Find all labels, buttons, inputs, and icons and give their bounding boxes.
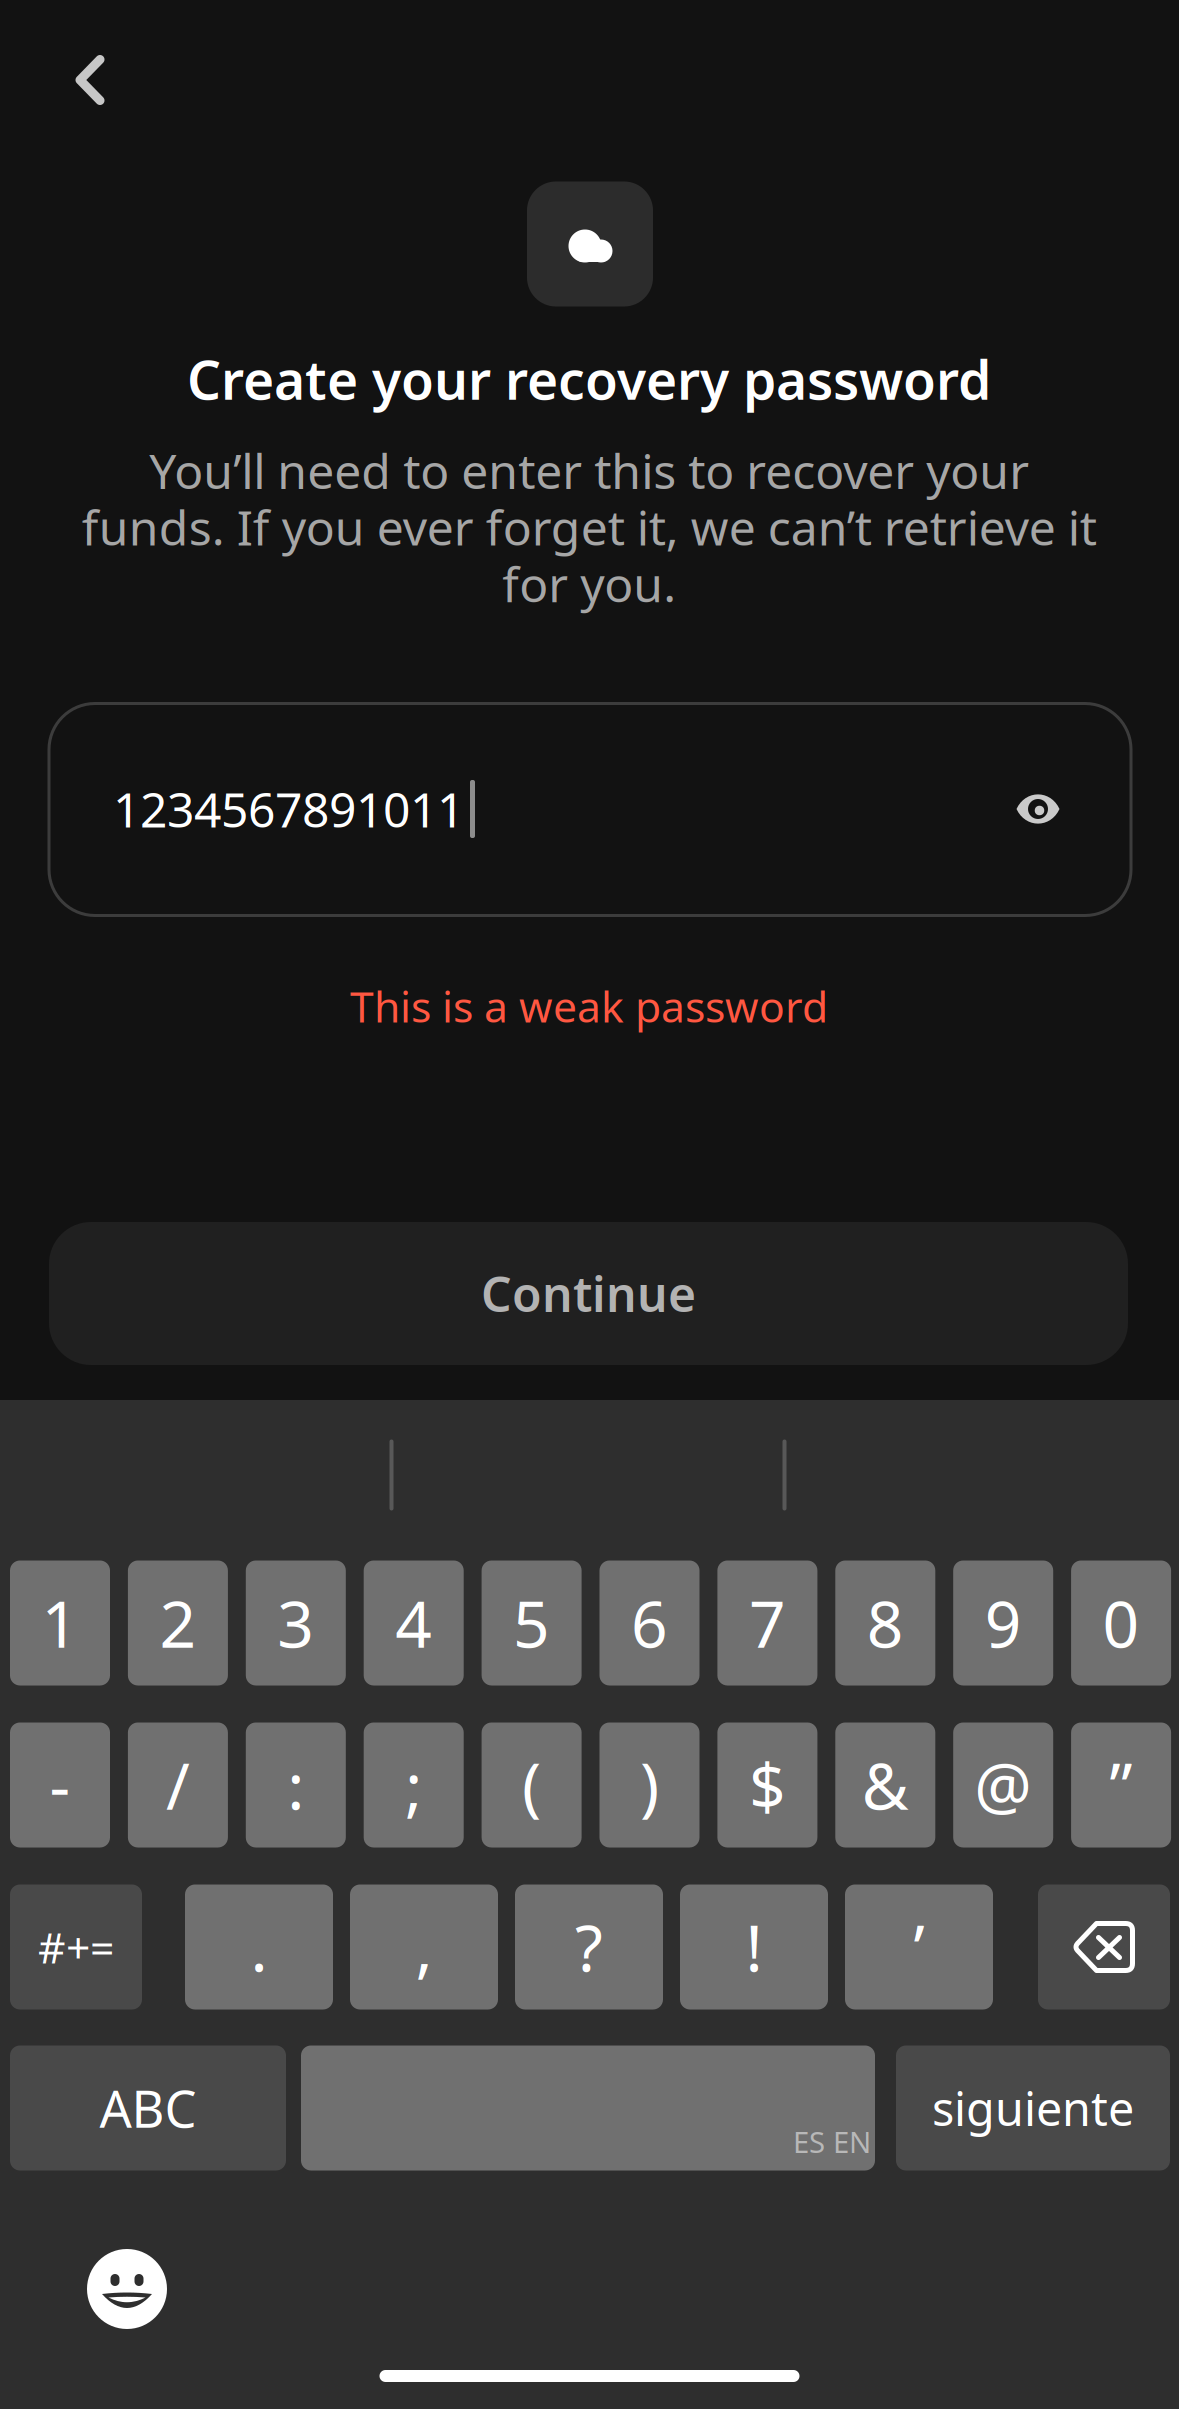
button[interactable]: : <box>246 1722 346 1847</box>
staticText: 6 <box>631 1580 668 1665</box>
button[interactable]: 3 <box>246 1560 346 1685</box>
staticText: Create your recovery password <box>187 344 991 414</box>
button[interactable]: 5 <box>482 1560 582 1685</box>
button[interactable]: 6 <box>599 1560 699 1685</box>
button[interactable]: ( <box>482 1722 582 1847</box>
staticText: 9 <box>985 1580 1022 1665</box>
button[interactable]: ) <box>599 1722 699 1847</box>
button[interactable]: Continue <box>49 1222 1128 1365</box>
staticText: 1 <box>41 1580 78 1665</box>
staticText: ABC <box>99 2074 196 2142</box>
staticText: ( <box>522 1742 541 1827</box>
staticText: Continue <box>481 1262 696 1325</box>
staticText: & <box>862 1742 909 1827</box>
button[interactable]: / <box>128 1722 228 1847</box>
button[interactable]: ’ <box>845 1884 993 2009</box>
staticText: ’ <box>913 1904 924 1989</box>
button[interactable]: $ <box>717 1722 817 1847</box>
staticText: You’ll need to enter this to recover you… <box>81 438 1096 616</box>
staticText: ” <box>1110 1742 1133 1827</box>
button[interactable]: 0 <box>1071 1560 1171 1685</box>
button[interactable]: ; <box>364 1722 464 1847</box>
button[interactable]: siguiente <box>896 2045 1170 2170</box>
staticText: $ <box>749 1742 786 1827</box>
staticText: #+= <box>38 1919 114 1975</box>
staticText: 7 <box>749 1580 786 1665</box>
staticText: ) <box>640 1742 659 1827</box>
staticText: ES EN <box>793 2122 871 2161</box>
button[interactable]: ? <box>515 1884 663 2009</box>
staticText: : <box>287 1742 304 1827</box>
staticText: ? <box>575 1904 603 1989</box>
button[interactable]: Space <box>301 2045 875 2170</box>
button[interactable]: & <box>835 1722 935 1847</box>
button[interactable]: ” <box>1071 1722 1171 1847</box>
staticText: - <box>49 1742 70 1827</box>
button[interactable]: #+= <box>10 1884 142 2009</box>
button[interactable]: @ <box>953 1722 1053 1847</box>
button[interactable]: 2 <box>128 1560 228 1685</box>
button[interactable]: 7 <box>717 1560 817 1685</box>
staticText: @ <box>974 1742 1032 1827</box>
button[interactable]: - <box>10 1722 110 1847</box>
staticText: 0 <box>1103 1580 1140 1665</box>
button[interactable]: Back <box>35 25 145 135</box>
staticText: ! <box>745 1904 762 1989</box>
staticText: 4 <box>395 1580 432 1665</box>
button[interactable]: 9 <box>953 1560 1053 1685</box>
button[interactable]: Delete <box>1038 1884 1170 2009</box>
staticText: ; <box>405 1742 422 1827</box>
button[interactable]: 4 <box>364 1560 464 1685</box>
button[interactable]: Emoji keyboard <box>87 2249 167 2329</box>
staticText: / <box>166 1742 190 1827</box>
staticText: 3 <box>277 1580 314 1665</box>
staticText: 8 <box>867 1580 904 1665</box>
button[interactable]: 1 <box>10 1560 110 1685</box>
button[interactable]: . <box>185 1884 333 2009</box>
button[interactable]: ! <box>680 1884 828 2009</box>
staticText: . <box>250 1904 267 1989</box>
staticText: 2 <box>159 1580 196 1665</box>
staticText: , <box>415 1904 432 1989</box>
staticText: This is a weak password <box>350 978 828 1034</box>
staticText: siguiente <box>932 2077 1134 2139</box>
staticText: 1234567891011 <box>113 777 464 841</box>
button[interactable]: 8 <box>835 1560 935 1685</box>
staticText: 5 <box>513 1580 550 1665</box>
button[interactable]: ABC <box>10 2045 286 2170</box>
button[interactable]: , <box>350 1884 498 2009</box>
